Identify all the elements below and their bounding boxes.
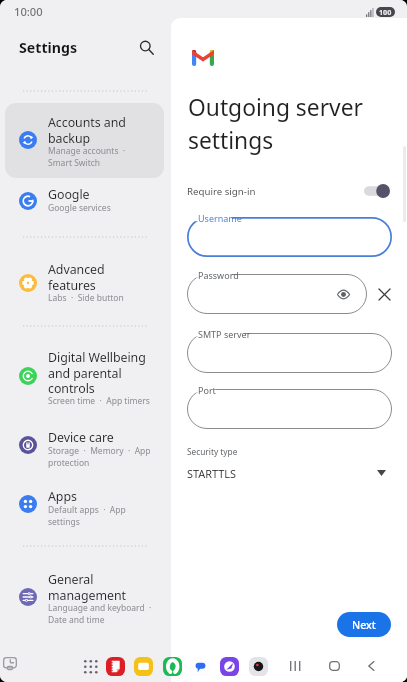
staticText: Username [198, 212, 242, 224]
button[interactable]: STARTTLS [171, 460, 407, 486]
staticText: Advanced features [48, 261, 105, 293]
staticText: General management [48, 571, 126, 603]
button[interactable]: Search [134, 35, 158, 59]
staticText: Password [198, 269, 239, 281]
staticText: Storage · Memory · App protection [48, 445, 151, 469]
staticText: Next [352, 618, 376, 632]
button[interactable]: Require sign-in [171, 178, 407, 204]
staticText: Labs · Side button [48, 292, 124, 304]
button[interactable]: NOTES [134, 657, 153, 676]
button[interactable]: Next [337, 612, 391, 637]
staticText: Settings [19, 38, 78, 57]
button[interactable]: Require sign-in toggle [364, 182, 390, 200]
staticText: SMTP server [198, 328, 251, 340]
button[interactable]: Digital Wellbeing and parental controls [0, 343, 171, 413]
button[interactable]: Clear password [374, 284, 394, 304]
staticText: Accounts and backup [48, 114, 126, 146]
staticText: Google services [48, 202, 111, 214]
button[interactable]: Accounts and backup [0, 103, 171, 178]
button[interactable]: Google [0, 182, 171, 220]
staticText: Screen time · App timers [48, 395, 150, 407]
button[interactable]: GALLERY [106, 657, 125, 676]
button[interactable]: Back [358, 653, 384, 679]
staticText: Device care [48, 429, 114, 446]
button[interactable]: Apps [0, 486, 171, 536]
button[interactable]: Recents panel [1, 655, 18, 672]
staticText: Require sign-in [187, 185, 256, 198]
button[interactable]: PHONE [163, 657, 182, 676]
staticText: STARTTLS [187, 466, 237, 481]
button[interactable]: Home [321, 653, 347, 679]
staticText: Digital Wellbeing and parental controls [48, 349, 146, 396]
staticText: Outgoing server settings [188, 92, 363, 156]
button[interactable]: Show password [335, 286, 351, 302]
staticText: Default apps · App settings [48, 504, 126, 528]
staticText: Manage accounts · Smart Switch [48, 145, 126, 169]
button[interactable] [5, 103, 164, 178]
staticText: Language and keyboard · Date and time [48, 602, 152, 626]
button[interactable]: Port [187, 389, 392, 429]
button[interactable]: INTERNET [220, 657, 239, 676]
staticText: 10:00 [14, 4, 43, 19]
button[interactable]: Username [187, 217, 392, 257]
staticText: Port [198, 384, 216, 396]
button[interactable]: All apps [80, 656, 99, 675]
button[interactable]: SMTP server [187, 333, 392, 373]
button[interactable]: Advanced features [0, 254, 171, 312]
staticText: Apps [48, 488, 77, 505]
button[interactable]: Device care [0, 426, 171, 476]
button[interactable]: Recents [282, 653, 308, 679]
button[interactable]: MSG [191, 657, 210, 676]
button[interactable]: General management [0, 564, 171, 634]
button[interactable]: CAMERA [249, 657, 268, 676]
staticText: Google [48, 186, 90, 203]
staticText: 100 [379, 7, 392, 17]
staticText: Security type [187, 446, 238, 457]
button[interactable]: Password [187, 274, 367, 314]
